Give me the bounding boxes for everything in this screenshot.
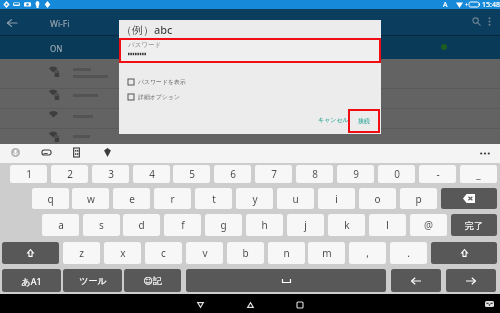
button[interactable]: ,: [349, 242, 386, 264]
button[interactable]: x: [104, 242, 141, 264]
button[interactable]: n: [268, 242, 305, 264]
button[interactable]: _: [460, 165, 497, 183]
button[interactable]: More options: [482, 14, 496, 28]
staticText: n: [283, 246, 290, 260]
staticText: t: [212, 192, 216, 206]
button[interactable]: Space: [186, 269, 386, 292]
staticText: 3: [108, 167, 114, 181]
staticText: あA1: [21, 275, 42, 287]
button[interactable]: -: [419, 165, 456, 183]
button[interactable]: 完了: [451, 214, 497, 236]
button[interactable]: w: [72, 188, 109, 209]
button[interactable]: 6: [214, 165, 251, 183]
button[interactable]: u: [277, 188, 314, 209]
button[interactable]: v: [186, 242, 223, 264]
button[interactable]: Voice input: [9, 146, 22, 159]
staticText: b: [242, 246, 249, 260]
button[interactable]: Backspace: [441, 188, 497, 209]
button[interactable]: 詳細オプション: [128, 93, 238, 100]
button[interactable]: 4: [133, 165, 170, 183]
button[interactable]: [0, 88, 500, 107]
button[interactable]: a: [42, 214, 79, 236]
button[interactable]: 5: [173, 165, 210, 183]
button[interactable]: Clipboard: [40, 146, 53, 159]
staticText: .: [407, 246, 410, 260]
button[interactable]: 3: [92, 165, 129, 183]
staticText: 7: [271, 167, 277, 181]
staticText: Wi-Fi: [50, 18, 70, 30]
button[interactable]: j: [287, 214, 324, 236]
button[interactable]: Left: [391, 269, 441, 292]
button[interactable]: m: [308, 242, 345, 264]
button[interactable]: 8: [296, 165, 333, 183]
button[interactable]: Back: [4, 15, 19, 30]
button[interactable]: [0, 59, 500, 88]
button[interactable]: r: [154, 188, 191, 209]
staticText: ☺記: [143, 275, 162, 286]
button[interactable]: あA1: [2, 269, 61, 292]
button[interactable]: Search: [469, 14, 484, 29]
button[interactable]: Recents: [292, 297, 308, 313]
button[interactable]: Hide keyboard: [482, 298, 497, 309]
staticText: f: [181, 218, 185, 232]
button[interactable]: Back: [192, 297, 208, 313]
button[interactable]: [0, 129, 500, 145]
button[interactable]: t: [195, 188, 232, 209]
button[interactable]: 9: [337, 165, 374, 183]
staticText: i: [335, 192, 338, 206]
staticText: 詳細オプション: [138, 93, 180, 100]
staticText: r: [170, 192, 175, 206]
button[interactable]: キャンセル: [317, 112, 350, 128]
button[interactable]: Right: [446, 269, 496, 292]
button[interactable]: y: [236, 188, 273, 209]
button[interactable]: c: [145, 242, 182, 264]
button[interactable]: Theme: [101, 146, 114, 159]
staticText: @: [424, 218, 433, 232]
button[interactable]: 1: [10, 165, 47, 183]
button[interactable]: More: [478, 146, 492, 160]
button[interactable]: @: [410, 214, 447, 236]
staticText: 9: [353, 167, 359, 181]
button[interactable]: Shift: [431, 242, 497, 264]
staticText: 完了: [465, 220, 483, 231]
button[interactable]: e: [113, 188, 150, 209]
button[interactable]: d: [123, 214, 160, 236]
button[interactable]: [0, 108, 500, 128]
button[interactable]: q: [32, 188, 69, 209]
staticText: 0: [394, 167, 400, 181]
staticText: w: [87, 192, 95, 206]
staticText: 6: [230, 167, 236, 181]
button[interactable]: o: [359, 188, 396, 209]
button[interactable]: パスワードを表示: [128, 78, 238, 85]
button[interactable]: Home: [242, 297, 258, 313]
staticText: m: [322, 246, 332, 260]
button[interactable]: 7: [255, 165, 292, 183]
staticText: j: [304, 218, 307, 232]
button[interactable]: p: [400, 188, 437, 209]
button[interactable]: z: [63, 242, 100, 264]
button[interactable]: Shift: [2, 242, 59, 264]
staticText: a: [58, 218, 64, 232]
button[interactable]: s: [83, 214, 120, 236]
button[interactable]: l: [369, 214, 406, 236]
button[interactable]: .: [390, 242, 427, 264]
button[interactable]: b: [227, 242, 264, 264]
button[interactable]: f: [164, 214, 201, 236]
staticText: 1: [26, 167, 32, 181]
button[interactable]: g: [205, 214, 242, 236]
button[interactable]: 2: [51, 165, 88, 183]
staticText: x: [120, 246, 126, 260]
button[interactable]: ON: [0, 36, 500, 59]
staticText: v: [202, 246, 208, 260]
staticText: z: [79, 246, 84, 260]
staticText: e: [129, 192, 135, 206]
button[interactable]: 接続: [350, 111, 378, 131]
button[interactable]: h: [246, 214, 283, 236]
staticText: h: [261, 218, 268, 232]
button[interactable]: 0: [378, 165, 415, 183]
button[interactable]: i: [318, 188, 355, 209]
button[interactable]: ☺記: [124, 269, 181, 292]
button[interactable]: ツール: [63, 269, 122, 292]
button[interactable]: Keyboard layout: [70, 146, 83, 159]
button[interactable]: k: [328, 214, 365, 236]
